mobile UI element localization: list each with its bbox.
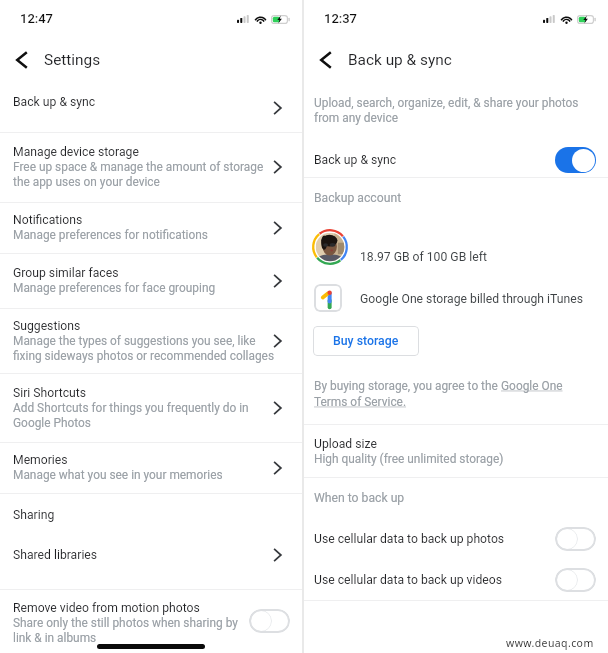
- staticText: Suggestions: [13, 319, 81, 333]
- staticText: Settings: [44, 51, 101, 69]
- button[interactable]: Suggestions: [0, 309, 302, 373]
- staticText: Remove video from motion photos: [13, 601, 200, 615]
- button[interactable]: [555, 147, 596, 173]
- button[interactable]: Notifications: [0, 203, 302, 253]
- button[interactable]: Back up & sync: [0, 95, 302, 109]
- staticText: Manage device storage: [13, 145, 139, 159]
- button[interactable]: Use cellular data to back up videos: [304, 564, 608, 596]
- button[interactable]: Manage device storage: [0, 133, 302, 202]
- staticText: Use cellular data to back up videos: [314, 573, 555, 587]
- staticText: Back up & sync: [13, 95, 96, 109]
- button[interactable]: Remove video from motion photos: [0, 590, 302, 651]
- button[interactable]: Shared libraries: [0, 548, 302, 562]
- staticText: Group similar faces: [13, 266, 119, 280]
- staticText: Use cellular data to back up photos: [314, 532, 555, 546]
- staticText: Buy storage: [333, 334, 399, 348]
- staticText: 12:37: [324, 11, 358, 26]
- staticText: Shared libraries: [13, 548, 98, 562]
- staticText: Back up & sync: [314, 153, 555, 167]
- button[interactable]: Upload size: [304, 425, 608, 477]
- button[interactable]: Back: [312, 46, 340, 74]
- staticText: By buying storage, you agree to the: [314, 379, 501, 393]
- button[interactable]: Use cellular data to back up photos: [304, 523, 608, 555]
- staticText: Memories: [13, 453, 68, 467]
- staticText: 12:47: [20, 11, 54, 26]
- staticText: Sharing: [13, 508, 55, 522]
- staticText: Add Shortcuts for things you frequently …: [13, 401, 249, 430]
- staticText: Free up space & manage the amount of sto…: [13, 160, 264, 189]
- staticText: www.deuaq.com: [506, 636, 594, 650]
- staticText: Manage what you see in your memories: [13, 468, 223, 482]
- staticText: Manage the types of suggestions you see,…: [13, 334, 275, 363]
- staticText: When to back up: [314, 491, 405, 505]
- button[interactable]: Siri Shortcuts: [0, 374, 302, 442]
- staticText: Google One: [501, 379, 563, 393]
- button[interactable]: Back: [8, 46, 36, 74]
- staticText: Back up & sync: [348, 51, 452, 69]
- staticText: 18.97 GB of 100 GB left: [360, 250, 487, 264]
- button[interactable]: Sharing: [0, 494, 302, 522]
- button[interactable]: Memories: [0, 443, 302, 493]
- button[interactable]: [555, 527, 596, 551]
- staticText: Manage preferences for face grouping: [13, 281, 216, 295]
- button[interactable]: Back up & sync: [304, 147, 608, 173]
- staticText: Manage preferences for notifications: [13, 228, 208, 242]
- staticText: Siri Shortcuts: [13, 386, 87, 400]
- staticText: Share only the still photos when sharing…: [13, 616, 238, 645]
- staticText: Upload, search, organize, edit, & share …: [314, 96, 579, 125]
- button[interactable]: [555, 568, 596, 592]
- staticText: Upload size: [314, 437, 377, 451]
- staticText: Backup account: [314, 191, 402, 205]
- staticText: Notifications: [13, 213, 83, 227]
- button[interactable]: [249, 609, 290, 633]
- button[interactable]: Buy storage: [313, 326, 419, 356]
- staticText: High quality (free unlimited storage): [314, 452, 504, 466]
- staticText: Google One storage billed through iTunes: [360, 292, 583, 306]
- staticText: Terms of Service.: [314, 395, 407, 409]
- button[interactable]: Group similar faces: [0, 254, 302, 308]
